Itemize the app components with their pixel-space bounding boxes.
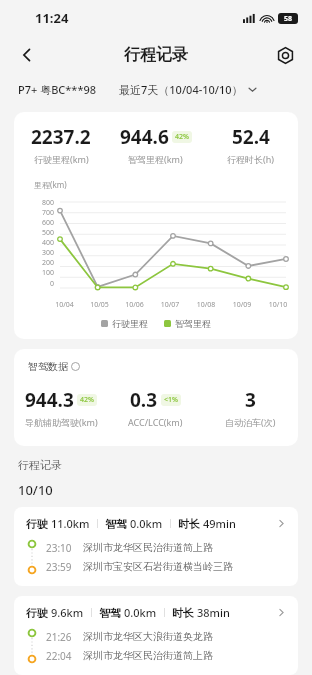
- staticText: P7+ 粤BC***98: [18, 82, 97, 97]
- staticText: 600: [28, 218, 54, 228]
- staticText: 0: [28, 279, 54, 289]
- staticText: <1%: [164, 395, 178, 405]
- staticText: 深圳市龙华区大浪街道奂龙路: [83, 630, 213, 643]
- staticText: 49min: [203, 516, 236, 531]
- button[interactable]: 行驶: [14, 507, 298, 586]
- staticText: 智驾: [99, 605, 124, 620]
- staticText: 10/10: [260, 300, 296, 310]
- staticText: 导航辅助驾驶(km): [25, 416, 98, 428]
- staticText: 行程记录: [124, 45, 188, 65]
- staticText: 自动泊车(次): [225, 416, 276, 428]
- staticText: 21:26: [46, 630, 72, 644]
- staticText: 2237.2: [31, 124, 91, 150]
- staticText: 10/08: [188, 300, 224, 310]
- button[interactable]: Back: [10, 38, 44, 72]
- staticText: 行驶: [26, 516, 51, 531]
- staticText: 700: [28, 208, 54, 218]
- staticText: 42%: [80, 395, 94, 405]
- staticText: 时长: [172, 605, 197, 620]
- staticText: 智驾里程: [175, 318, 211, 329]
- staticText: 944.3: [25, 387, 74, 413]
- staticText: 200: [28, 258, 54, 268]
- staticText: 42%: [175, 132, 189, 142]
- staticText: 300: [28, 248, 54, 258]
- staticText: 10/06: [117, 300, 152, 310]
- staticText: 智驾里程(km): [128, 153, 183, 165]
- staticText: 52.4: [232, 124, 270, 150]
- staticText: 400: [28, 238, 54, 248]
- staticText: 11:24: [35, 9, 69, 27]
- staticText: 行程记录: [18, 458, 62, 472]
- button[interactable]: Settings: [268, 38, 302, 72]
- staticText: 9.6km: [51, 605, 84, 620]
- staticText: 23:59: [46, 560, 72, 574]
- staticText: 944.6: [120, 124, 169, 150]
- staticText: 800: [28, 198, 54, 208]
- staticText: 10/07: [152, 300, 188, 310]
- staticText: 0.0km: [130, 516, 163, 531]
- staticText: 22:04: [46, 649, 72, 663]
- staticText: 深圳市龙华区民治街道简上路: [83, 541, 213, 554]
- button[interactable]: 最近7天（10/04-10/10）: [119, 82, 257, 97]
- staticText: 10/10: [18, 481, 53, 499]
- staticText: 0.0km: [124, 605, 157, 620]
- button[interactable]: 行驶: [14, 596, 298, 675]
- staticText: 3: [245, 387, 256, 413]
- staticText: 行驶: [26, 605, 51, 620]
- staticText: 智驾数据: [28, 360, 68, 373]
- staticText: 500: [28, 228, 54, 238]
- staticText: 时长: [178, 516, 203, 531]
- staticText: 10/05: [82, 300, 117, 310]
- staticText: 100: [28, 268, 54, 278]
- button[interactable]: P7+ 粤BC***98: [18, 82, 97, 97]
- staticText: 10/09: [224, 300, 260, 310]
- staticText: 0.3: [130, 387, 158, 413]
- staticText: 最近7天（10/04-10/10）: [119, 82, 243, 97]
- staticText: 行驶里程: [112, 318, 148, 329]
- staticText: 智驾: [105, 516, 130, 531]
- staticText: 11.0km: [51, 516, 90, 531]
- staticText: 深圳市龙华区民治街道简上路: [83, 649, 213, 662]
- staticText: 38min: [197, 605, 230, 620]
- staticText: 里程(km): [34, 179, 67, 190]
- staticText: 10/04: [47, 300, 82, 310]
- staticText: 深圳市宝安区石岩街道横当岭三路: [83, 560, 233, 573]
- staticText: 58: [284, 14, 293, 24]
- staticText: 23:10: [46, 541, 72, 555]
- staticText: 行驶里程(km): [34, 153, 89, 165]
- staticText: ACC/LCC(km): [128, 416, 183, 428]
- staticText: 行程时长(h): [227, 153, 274, 165]
